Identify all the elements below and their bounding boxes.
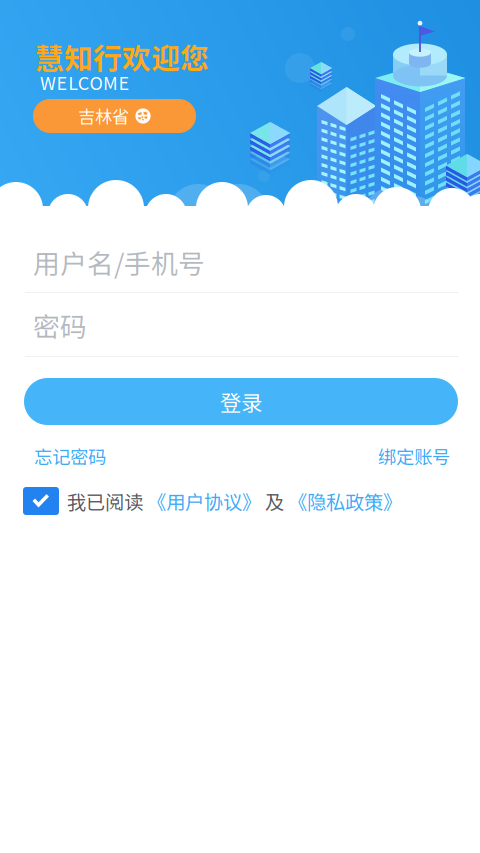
button[interactable]: 用户名/手机号 [25, 240, 467, 284]
staticText: 绑定账号 [378, 443, 450, 469]
button[interactable]: 密码 [25, 303, 467, 347]
button[interactable]: 忘记密码 [34, 443, 106, 469]
staticText: 吉林省 [78, 103, 129, 129]
staticText: 登录 [220, 386, 262, 417]
staticText: 《隐私政策》 [288, 487, 402, 515]
staticText: 《用户协议》 [147, 487, 261, 515]
staticText: WELCOME [40, 69, 130, 95]
button[interactable]: 登录 [24, 378, 458, 425]
staticText: 用户名/手机号 [33, 243, 205, 281]
button[interactable]: 吉林省 [33, 99, 196, 133]
staticText: 慧知行欢迎您 [35, 36, 209, 77]
staticText: 忘记密码 [34, 443, 106, 469]
staticText: 密码 [33, 306, 87, 344]
staticText: 我已阅读 [59, 487, 147, 515]
button[interactable]: 同意用户协议 [23, 487, 59, 515]
button[interactable]: 《用户协议》 [147, 487, 261, 515]
button[interactable]: 绑定账号 [378, 443, 450, 469]
button[interactable]: 《隐私政策》 [288, 487, 402, 515]
staticText: 及 [261, 487, 288, 515]
